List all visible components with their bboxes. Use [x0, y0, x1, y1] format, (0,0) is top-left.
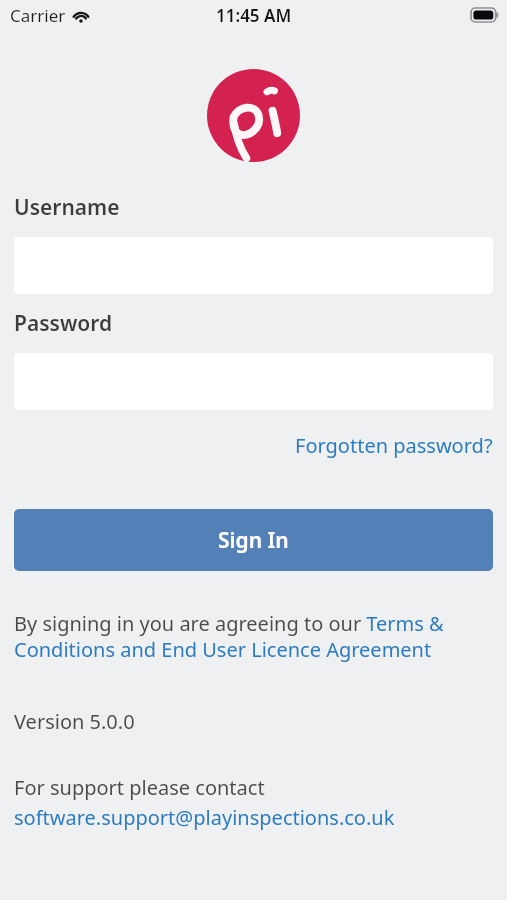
staticText: Version 5.0.0 — [14, 708, 135, 735]
button[interactable]: Forgotten password? — [295, 432, 493, 459]
button[interactable]: By signing in you are agreeing to our Te… — [14, 610, 493, 662]
button[interactable]: Sign In — [14, 509, 493, 571]
button[interactable]: software.support@playinspections.co.uk — [14, 804, 395, 831]
staticText: Forgotten password? — [295, 432, 493, 459]
staticText: For support please contact — [14, 774, 265, 801]
staticText: software.support@playinspections.co.uk — [14, 804, 395, 831]
staticText: Password — [14, 309, 113, 338]
staticText: Carrier — [10, 4, 66, 27]
staticText: Sign In — [218, 526, 289, 555]
staticText: Username — [14, 193, 120, 222]
staticText: By signing in you are agreeing to our Te… — [14, 610, 493, 662]
staticText: 11:45 AM — [216, 4, 292, 27]
